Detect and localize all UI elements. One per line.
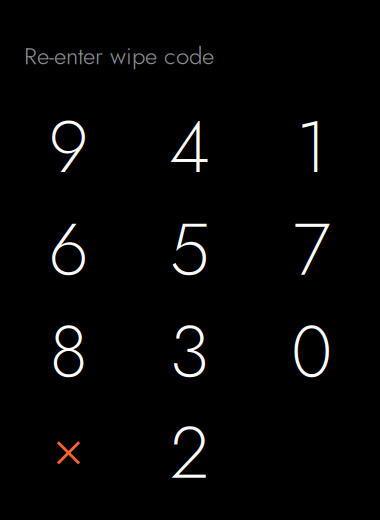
- button[interactable]: 0: [251, 301, 372, 403]
- staticText: Re-enter wipe code: [24, 39, 214, 73]
- staticText: 2: [170, 401, 209, 505]
- button[interactable]: 3: [129, 301, 250, 403]
- staticText: 0: [291, 300, 332, 404]
- staticText: 3: [169, 300, 209, 404]
- button[interactable]: Cancel: [8, 402, 129, 504]
- button[interactable]: 6: [8, 199, 129, 301]
- staticText: 8: [49, 300, 87, 404]
- staticText: 1: [296, 95, 327, 199]
- staticText: 7: [293, 198, 330, 302]
- staticText: 4: [169, 95, 210, 199]
- staticText: 5: [169, 198, 209, 302]
- button[interactable]: 4: [129, 96, 250, 198]
- button[interactable]: 9: [8, 96, 129, 198]
- button[interactable]: 5: [129, 199, 250, 301]
- staticText: 9: [48, 95, 88, 199]
- button[interactable]: 8: [8, 301, 129, 403]
- button[interactable]: 1: [251, 96, 372, 198]
- button[interactable]: 7: [251, 199, 372, 301]
- button[interactable]: 2: [129, 402, 250, 504]
- staticText: 6: [48, 198, 88, 302]
